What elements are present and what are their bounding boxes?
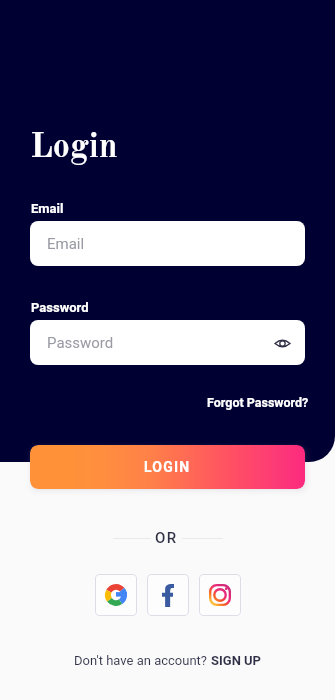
button[interactable]: Password (30, 320, 305, 365)
button[interactable]: Forgot Password? (207, 395, 309, 410)
button[interactable]: LOGIN (30, 445, 305, 489)
button[interactable]: Sign in with Instagram (199, 574, 241, 616)
staticText: Email (47, 235, 85, 253)
button[interactable]: Email (30, 221, 305, 266)
staticText: Don't have an account? (74, 653, 211, 668)
button[interactable]: Show password (272, 333, 292, 353)
staticText: OR (155, 529, 178, 547)
staticText: LOGIN (144, 459, 191, 475)
staticText: Login (30, 131, 118, 165)
button[interactable]: Sign in with Facebook (147, 574, 189, 616)
staticText: Password (47, 334, 114, 352)
button[interactable]: SIGN UP (211, 653, 262, 668)
staticText: Password (31, 300, 89, 315)
staticText: Email (31, 201, 64, 216)
button[interactable]: Sign in with Google (95, 574, 137, 616)
